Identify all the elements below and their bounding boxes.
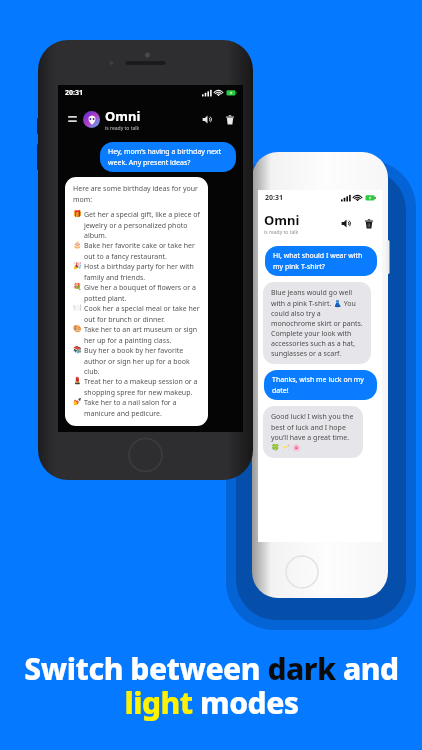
staticText: 🎂: [73, 241, 84, 249]
staticText: Cook her a special meal or take her out …: [84, 304, 200, 324]
staticText: Take her to a nail salon for a manicure …: [84, 398, 200, 418]
staticText: Switch between dark and light modes: [24, 648, 399, 722]
staticText: 20:31: [265, 193, 283, 203]
button[interactable]: Toggle sound: [340, 217, 353, 230]
staticText: Blue jeans would go well with a pink T-s…: [271, 288, 363, 358]
staticText: Host a birthday party for her with famil…: [84, 262, 200, 282]
button[interactable]: Blue jeans would go well with a pink T-s…: [263, 282, 371, 364]
staticText: Omni: [105, 107, 141, 125]
button[interactable]: Omni assistant: [83, 111, 100, 128]
staticText: Buy her a book by her favorite author or…: [84, 346, 200, 376]
staticText: 💄: [73, 377, 84, 385]
staticText: Good luck! I wish you the best of luck a…: [271, 412, 355, 452]
staticText: Give her a bouquet of flowers or a potte…: [84, 283, 200, 303]
staticText: Hi, what should I wear with my pink T-sh…: [273, 251, 369, 271]
staticText: 💅: [73, 398, 84, 406]
button[interactable]: Thanks, wish me luck on my date!: [264, 370, 377, 400]
button[interactable]: Hi, what should I wear with my pink T-sh…: [265, 246, 377, 276]
button[interactable]: Good luck! I wish you the best of luck a…: [263, 406, 363, 458]
staticText: 🎉: [73, 262, 84, 270]
staticText: Omni: [264, 211, 300, 229]
staticText: Hey, mom’s having a birthday next week. …: [108, 147, 228, 167]
button[interactable]: Clear conversation: [362, 217, 375, 230]
button[interactable]: Toggle sound: [201, 113, 214, 126]
button[interactable]: Clear conversation: [223, 113, 236, 126]
staticText: 💐: [73, 283, 84, 291]
staticText: 🍽: [73, 304, 84, 312]
staticText: Take her to an art museum or sign her up…: [84, 325, 200, 345]
button[interactable]: Here are some birthday ideas for your mo…: [65, 177, 208, 426]
staticText: Thanks, wish me luck on my date!: [272, 375, 369, 395]
staticText: 🎨: [73, 325, 84, 333]
button[interactable]: Menu: [65, 112, 79, 126]
staticText: Here are some birthday ideas for your mo…: [73, 184, 200, 204]
staticText: 📚: [73, 346, 84, 354]
staticText: is ready to talk: [105, 125, 140, 132]
staticText: 🎁: [73, 210, 84, 218]
staticText: is ready to talk: [264, 229, 299, 236]
staticText: Get her a special gift, like a piece of …: [84, 210, 200, 240]
staticText: 20:31: [65, 88, 83, 98]
staticText: Bake her favorite cake or take her out t…: [84, 241, 200, 261]
button[interactable]: Hey, mom’s having a birthday next week. …: [100, 142, 236, 172]
staticText: Treat her to a makeup session or a shopp…: [84, 377, 200, 397]
